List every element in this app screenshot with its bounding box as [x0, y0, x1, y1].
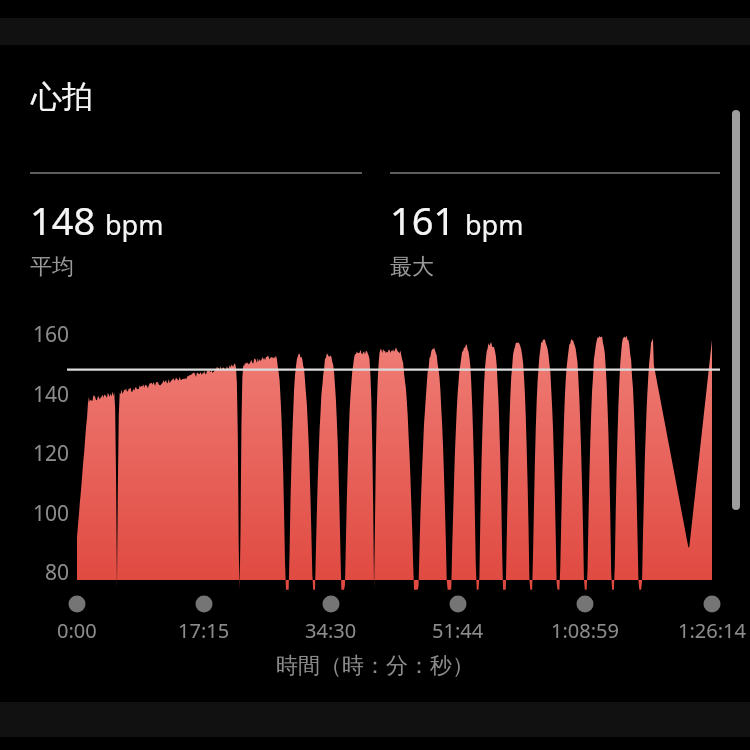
staticText: 51:44: [432, 617, 484, 644]
staticText: 0:00: [57, 617, 97, 644]
staticText: 心拍: [31, 77, 93, 116]
staticText: 1:26:14: [678, 617, 746, 644]
staticText: 120: [33, 439, 70, 468]
staticText: 161: [390, 194, 456, 246]
staticText: 1:08:59: [551, 617, 619, 644]
staticText: 160: [33, 320, 70, 349]
button[interactable]: 161: [390, 172, 720, 281]
staticText: 17:15: [178, 617, 230, 644]
staticText: 148: [30, 194, 96, 246]
staticText: 80: [45, 558, 70, 587]
staticText: 時間（時：分：秒）: [276, 652, 474, 680]
staticText: 34:30: [305, 617, 357, 644]
button[interactable]: 148: [30, 172, 362, 281]
staticText: bpm: [465, 206, 524, 243]
button[interactable]: 心拍: [28, 74, 96, 119]
staticText: 100: [33, 499, 70, 528]
staticText: 平均: [30, 253, 74, 281]
staticText: bpm: [105, 206, 164, 243]
staticText: 140: [33, 380, 70, 409]
staticText: 最大: [390, 253, 434, 281]
